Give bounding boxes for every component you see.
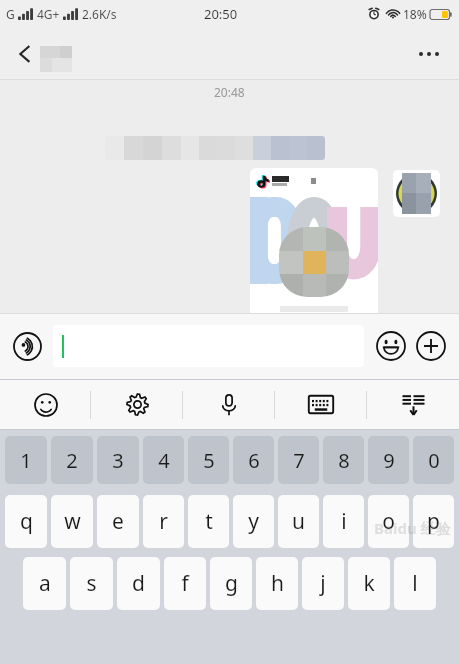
staticText: 18% bbox=[403, 6, 427, 22]
button[interactable]: Voice input bbox=[10, 329, 44, 363]
staticText: d bbox=[132, 569, 145, 598]
button[interactable]: a bbox=[23, 557, 66, 610]
button[interactable]: 5 bbox=[188, 436, 229, 484]
button[interactable]: y bbox=[233, 495, 274, 548]
button[interactable]: Keyboard bbox=[275, 379, 367, 430]
staticText: 20:50 bbox=[204, 5, 238, 23]
staticText: w bbox=[64, 507, 81, 536]
button[interactable]: Settings bbox=[91, 379, 183, 430]
button[interactable]: More options bbox=[407, 32, 451, 76]
staticText: r bbox=[159, 507, 168, 536]
button[interactable]: Avatar bbox=[393, 170, 440, 217]
button[interactable]: j bbox=[302, 557, 344, 610]
button[interactable]: More functions bbox=[413, 328, 449, 364]
button[interactable] bbox=[53, 325, 364, 367]
staticText: 4G+ bbox=[37, 6, 60, 22]
button[interactable]: 3 bbox=[97, 436, 139, 484]
staticText: G bbox=[6, 6, 15, 22]
staticText: 2.6K/s bbox=[82, 6, 117, 22]
button[interactable]: Emoji bbox=[373, 328, 409, 364]
button[interactable]: 9 bbox=[368, 436, 409, 484]
staticText: 6 bbox=[248, 447, 260, 474]
staticText: 4 bbox=[158, 447, 170, 474]
staticText: 5 bbox=[203, 447, 215, 474]
staticText: o bbox=[382, 507, 395, 536]
staticText: j bbox=[320, 569, 326, 598]
staticText: 9 bbox=[383, 447, 395, 474]
button[interactable]: o bbox=[368, 495, 409, 548]
button[interactable]: e bbox=[97, 495, 139, 548]
button[interactable]: h bbox=[256, 557, 298, 610]
button[interactable]: Hide keyboard bbox=[367, 379, 459, 430]
button[interactable] bbox=[105, 136, 325, 160]
button[interactable]: 0 bbox=[413, 436, 454, 484]
button[interactable]: g bbox=[210, 557, 252, 610]
staticText: g bbox=[225, 569, 238, 598]
staticText: 邀你成为抖音好友 bbox=[270, 319, 358, 333]
staticText: 0 bbox=[428, 447, 440, 474]
button[interactable]: 8 bbox=[323, 436, 364, 484]
staticText: p bbox=[427, 507, 440, 536]
staticText: i bbox=[341, 507, 347, 536]
button[interactable]: p bbox=[413, 495, 454, 548]
staticText: a bbox=[39, 569, 51, 598]
button[interactable]: q bbox=[5, 495, 47, 548]
button[interactable]: r bbox=[143, 495, 184, 548]
button[interactable]: Emoji keyboard bbox=[0, 379, 91, 430]
staticText: 7 bbox=[293, 447, 305, 474]
button[interactable]: 4 bbox=[143, 436, 184, 484]
button[interactable]: i bbox=[323, 495, 364, 548]
button[interactable]: f bbox=[164, 557, 206, 610]
button[interactable]: s bbox=[70, 557, 113, 610]
button[interactable]: t bbox=[188, 495, 229, 548]
button[interactable]: 1 bbox=[5, 436, 47, 484]
button[interactable]: 7 bbox=[278, 436, 319, 484]
staticText: y bbox=[248, 507, 259, 536]
staticText: s bbox=[86, 569, 97, 598]
staticText: 3 bbox=[112, 447, 124, 474]
button[interactable]: l bbox=[394, 557, 436, 610]
button[interactable]: Back bbox=[4, 33, 46, 75]
button[interactable]: k bbox=[348, 557, 390, 610]
button[interactable]: d bbox=[117, 557, 160, 610]
button[interactable]: 6 bbox=[233, 436, 274, 484]
staticText: 20:48 bbox=[214, 84, 245, 100]
staticText: 8 bbox=[338, 447, 350, 474]
staticText: t bbox=[205, 507, 213, 536]
staticText: 1 bbox=[20, 447, 32, 474]
button[interactable]: Voice bbox=[183, 379, 275, 430]
button[interactable]: w bbox=[51, 495, 93, 548]
staticText: q bbox=[20, 507, 33, 536]
staticText: k bbox=[363, 569, 375, 598]
staticText: u bbox=[292, 507, 305, 536]
staticText: 2 bbox=[66, 447, 78, 474]
button[interactable]: 2 bbox=[51, 436, 93, 484]
staticText: l bbox=[412, 569, 418, 598]
button[interactable]: u bbox=[278, 495, 319, 548]
staticText: f bbox=[181, 569, 189, 598]
staticText: e bbox=[112, 507, 124, 536]
button[interactable]: 邀你成为抖音好友 bbox=[250, 168, 378, 368]
staticText: h bbox=[271, 569, 284, 598]
staticText: Baidu 经验 bbox=[374, 518, 451, 538]
